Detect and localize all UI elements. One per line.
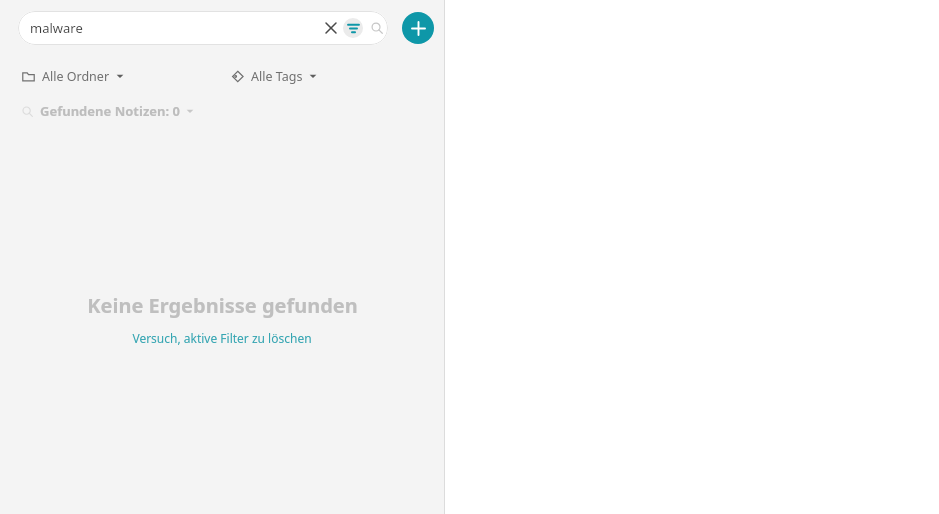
staticText: Versuch, aktive Filter zu löschen: [132, 330, 312, 346]
button[interactable]: Filter: [343, 18, 363, 38]
button[interactable]: Alle Ordner: [22, 66, 124, 86]
staticText: Alle Tags: [251, 68, 303, 85]
staticText: Gefundene Notizen: 0: [40, 102, 180, 120]
button[interactable]: Neue Notiz hinzufügen: [402, 12, 434, 44]
button[interactable]: Gefundene Notizen: 0: [22, 101, 194, 121]
staticText: malware: [30, 19, 83, 37]
staticText: Keine Ergebnisse gefunden: [87, 292, 358, 319]
button[interactable]: Versuch, aktive Filter zu löschen: [132, 330, 312, 346]
button[interactable]: malware: [18, 11, 388, 45]
staticText: Alle Ordner: [42, 68, 110, 85]
button[interactable]: Suche löschen: [323, 20, 339, 36]
button[interactable]: Suchen: [368, 19, 386, 37]
button[interactable]: Alle Tags: [231, 66, 317, 86]
